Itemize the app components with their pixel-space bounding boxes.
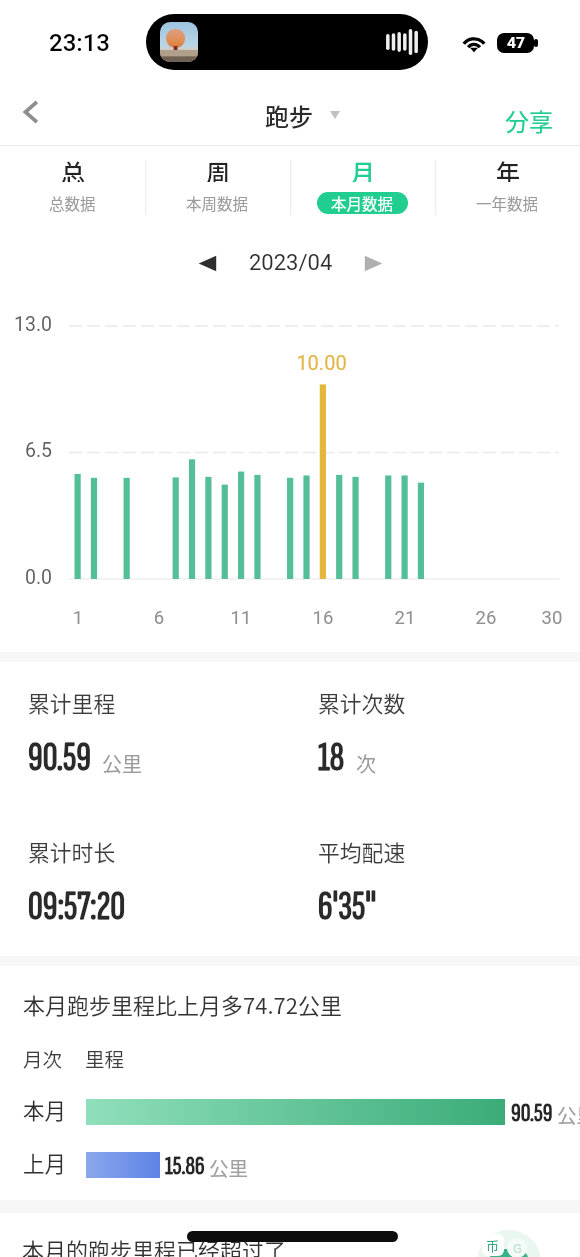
button[interactable]: Next month — [349, 241, 395, 285]
staticText: 15.86 — [165, 1150, 205, 1182]
staticText: 里程 — [85, 1044, 125, 1072]
button[interactable]: 周 — [145, 146, 290, 218]
staticText: 6 — [144, 607, 174, 629]
staticText: 本月的跑步里程已经超过了 — [22, 1233, 287, 1257]
staticText: 跑步 — [265, 98, 313, 133]
staticText: 13.0 — [0, 313, 52, 336]
button[interactable]: 分享 — [490, 86, 580, 145]
staticText: 21 — [390, 607, 420, 629]
staticText: 月 — [351, 154, 375, 182]
staticText: 23:13 — [49, 29, 110, 53]
staticText: 币 — [486, 1236, 500, 1255]
staticText: G — [513, 1241, 522, 1256]
staticText: 本月跑步里程比上月多74.72公里 — [23, 988, 342, 1020]
staticText: 分享 — [505, 103, 553, 138]
staticText: 90.59 — [28, 733, 91, 782]
staticText: 90.59 — [511, 1097, 553, 1129]
staticText: 总数据 — [49, 192, 96, 214]
staticText: 公里 — [102, 749, 142, 778]
staticText: 2023/04 — [249, 250, 333, 276]
staticText: 本月 — [23, 1094, 67, 1125]
button[interactable]: 累计里程 — [28, 687, 278, 782]
staticText: 公里 — [209, 1153, 249, 1181]
button[interactable]: 跑步 — [255, 86, 350, 145]
staticText: 11 — [226, 607, 256, 629]
staticText: 次 — [356, 749, 376, 778]
staticText: 6.5 — [0, 439, 52, 462]
staticText: 累计时长 — [28, 836, 116, 868]
button[interactable]: Previous month — [185, 241, 231, 285]
staticText: 周 — [206, 154, 230, 182]
staticText: 6'35" — [318, 882, 377, 931]
button[interactable]: 累计时长 — [28, 836, 278, 931]
staticText: 年 — [496, 154, 520, 182]
staticText: 09:57:20 — [28, 882, 126, 931]
staticText: 18 — [318, 733, 345, 782]
staticText: 上月 — [23, 1147, 67, 1178]
staticText: 16 — [308, 607, 338, 629]
staticText: 本周数据 — [186, 192, 249, 214]
staticText: 累计次数 — [318, 687, 406, 719]
button[interactable]: 累计次数 — [318, 687, 568, 782]
staticText: 47 — [507, 34, 525, 52]
staticText: 公里 — [557, 1100, 580, 1128]
staticText: 30 — [537, 607, 567, 629]
button[interactable]: 总 — [0, 146, 145, 218]
staticText: 累计里程 — [28, 687, 116, 719]
staticText: 月次 — [23, 1044, 63, 1072]
button[interactable]: 年 — [435, 146, 580, 218]
staticText: 26 — [471, 607, 501, 629]
button[interactable]: 平均配速 — [318, 836, 568, 931]
staticText: 0.0 — [0, 566, 52, 589]
staticText: 10.00 — [289, 351, 354, 374]
staticText: 本月数据 — [331, 192, 394, 214]
button[interactable]: Back — [0, 86, 62, 145]
staticText: 平均配速 — [318, 836, 406, 868]
staticText: 1 — [63, 607, 93, 629]
button[interactable]: 月 — [290, 146, 435, 218]
staticText: 一年数据 — [476, 192, 539, 214]
staticText: 总 — [61, 154, 85, 182]
